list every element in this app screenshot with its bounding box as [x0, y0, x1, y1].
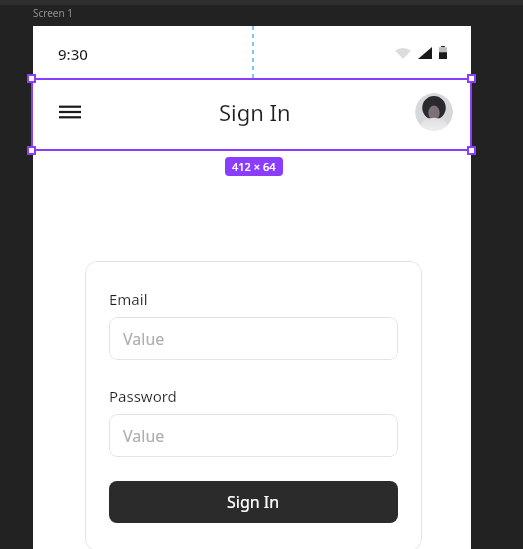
- button[interactable]: Value: [109, 414, 398, 457]
- button[interactable]: Profile: [415, 93, 453, 131]
- staticText: Sign In: [227, 491, 280, 513]
- staticText: Value: [123, 425, 165, 447]
- staticText: Screen 1: [33, 6, 73, 20]
- staticText: Email: [109, 289, 148, 309]
- button[interactable]: Sign In: [109, 481, 398, 523]
- staticText: 412 × 64: [232, 159, 276, 174]
- button[interactable]: Menu: [46, 88, 94, 136]
- staticText: Sign In: [219, 97, 291, 127]
- staticText: Password: [109, 386, 177, 406]
- button[interactable]: Value: [109, 317, 398, 360]
- staticText: Value: [123, 328, 165, 350]
- staticText: 9:30: [58, 44, 88, 64]
